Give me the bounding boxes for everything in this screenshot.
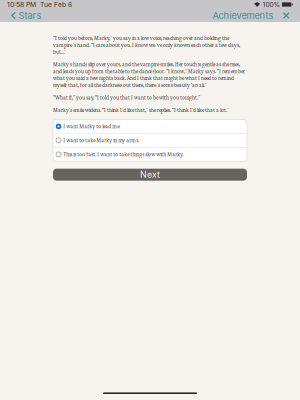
- staticText: This is too fast. I want to take things …: [63, 151, 183, 157]
- staticText: 10:58 PM: [7, 0, 36, 9]
- button[interactable]: Achievements: [208, 9, 277, 22]
- staticText: Achievements: [212, 10, 273, 21]
- staticText: Marky’s smile widens. “I think I’d like …: [53, 107, 229, 113]
- staticText: “I told you before, Marky,” you say in a…: [53, 35, 240, 55]
- staticText: Stars: [18, 10, 41, 21]
- staticText: Marky’s hands slip over yours, and the v…: [53, 61, 245, 88]
- staticText: 100%: [260, 0, 280, 9]
- button[interactable]: I want Marky to lead me.: [53, 120, 247, 133]
- button[interactable]: This is too fast. I want to take things …: [53, 148, 247, 161]
- button[interactable]: Stars: [5, 9, 47, 22]
- button[interactable]: Close: [277, 9, 295, 22]
- staticText: I want to take Marky in my arms.: [63, 137, 139, 143]
- button[interactable]: I want to take Marky in my arms.: [53, 134, 247, 147]
- staticText: “What if,” you say, “I told you that I w…: [53, 94, 200, 101]
- staticText: Next: [140, 169, 160, 180]
- button[interactable]: Next: [53, 169, 247, 181]
- staticText: Tue Feb 6: [36, 0, 72, 9]
- staticText: I want Marky to lead me.: [63, 123, 120, 129]
